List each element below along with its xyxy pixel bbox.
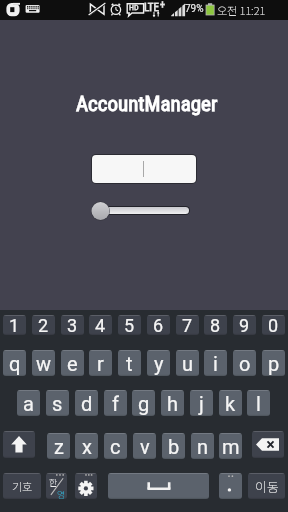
button[interactable]: z: [47, 433, 70, 459]
button[interactable]: 8: [204, 315, 227, 335]
staticText: 5: [124, 315, 135, 335]
button[interactable]: a: [17, 390, 40, 416]
staticText: b: [168, 435, 180, 458]
button[interactable]: Settings: [75, 473, 97, 499]
button[interactable]: r: [89, 350, 112, 376]
staticText: 기호: [12, 478, 33, 494]
button[interactable]: p: [262, 350, 285, 376]
button[interactable]: w: [32, 350, 55, 376]
staticText: l: [256, 392, 261, 415]
staticText: 이동: [255, 477, 279, 496]
staticText: 영: [57, 488, 66, 499]
staticText: a: [23, 392, 34, 415]
staticText: j: [199, 392, 204, 415]
button[interactable]: t: [118, 350, 141, 376]
button[interactable]: k: [219, 390, 242, 416]
button[interactable]: i: [204, 350, 227, 376]
staticText: HD: [129, 3, 139, 12]
staticText: x: [82, 435, 92, 458]
staticText: 3: [67, 315, 78, 335]
staticText: 9: [239, 315, 250, 335]
staticText: w: [36, 352, 52, 375]
staticText: e: [67, 352, 78, 375]
staticText: o: [239, 352, 251, 375]
staticText: v: [140, 435, 150, 458]
button[interactable]: q: [3, 350, 26, 376]
button[interactable]: [91, 154, 197, 184]
staticText: s: [52, 392, 63, 415]
staticText: q: [9, 352, 21, 375]
button[interactable]: j: [190, 390, 213, 416]
button[interactable]: 6: [147, 315, 170, 335]
staticText: r: [97, 352, 104, 375]
button[interactable]: 9: [233, 315, 256, 335]
staticText: k: [225, 392, 236, 415]
button[interactable]: Backspace: [252, 431, 284, 458]
button[interactable]: [91, 201, 111, 221]
button[interactable]: 1: [3, 315, 26, 335]
staticText: AccountManager: [76, 92, 218, 117]
staticText: g: [138, 392, 150, 415]
button[interactable]: h: [161, 390, 184, 416]
button[interactable]: x: [75, 433, 98, 459]
button[interactable]: 5: [118, 315, 141, 335]
staticText: y: [154, 352, 164, 375]
button[interactable]: l: [247, 390, 270, 416]
button[interactable]: 0: [262, 315, 285, 335]
button[interactable]: o: [233, 350, 256, 376]
staticText: f: [112, 392, 119, 415]
button[interactable]: Space: [108, 473, 209, 499]
staticText: 6: [153, 315, 164, 335]
staticText: z: [54, 435, 64, 458]
staticText: 4: [95, 315, 106, 335]
button[interactable]: g: [132, 390, 155, 416]
button[interactable]: b: [162, 433, 185, 459]
button[interactable]: 기호: [3, 473, 41, 499]
staticText: 0: [268, 315, 279, 335]
button[interactable]: 2: [32, 315, 55, 335]
button[interactable]: c: [104, 433, 127, 459]
button[interactable]: y: [147, 350, 170, 376]
staticText: t: [126, 352, 133, 375]
staticText: 1: [9, 315, 20, 335]
button[interactable]: e: [61, 350, 84, 376]
button[interactable]: Shift: [3, 431, 35, 458]
staticText: 79%: [185, 3, 204, 15]
button[interactable]: m: [219, 433, 242, 459]
staticText: LTE: [144, 1, 159, 14]
button[interactable]: v: [133, 433, 156, 459]
staticText: 한: [49, 476, 58, 489]
staticText: i: [213, 352, 218, 375]
button[interactable]: 4: [89, 315, 112, 335]
staticText: m: [222, 435, 240, 458]
button[interactable]: 3: [61, 315, 84, 335]
button[interactable]: n: [191, 433, 214, 459]
staticText: p: [268, 352, 280, 375]
staticText: +: [160, 0, 165, 11]
button[interactable]: u: [176, 350, 199, 376]
button[interactable]: Korean English toggle: [46, 473, 67, 499]
staticText: 8: [210, 315, 221, 335]
staticText: u: [182, 352, 194, 375]
staticText: h: [167, 392, 179, 415]
button[interactable]: Period: [219, 473, 242, 499]
staticText: 2: [38, 315, 49, 335]
button[interactable]: 이동: [248, 473, 285, 499]
staticText: n: [197, 435, 209, 458]
button[interactable]: 7: [176, 315, 199, 335]
staticText: d: [81, 392, 93, 415]
button[interactable]: d: [75, 390, 98, 416]
button[interactable]: s: [46, 390, 69, 416]
staticText: c: [110, 435, 121, 458]
button[interactable]: f: [104, 390, 127, 416]
staticText: 오전 11:21: [217, 2, 266, 18]
staticText: 7: [182, 315, 193, 335]
